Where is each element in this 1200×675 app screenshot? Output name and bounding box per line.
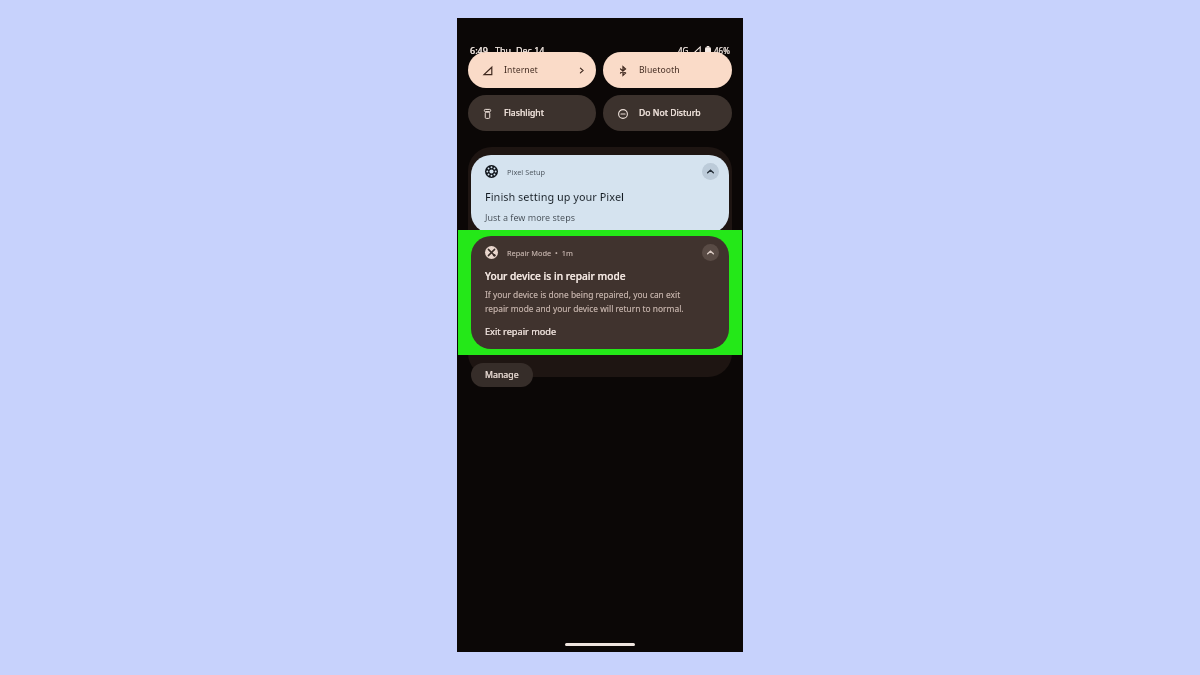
staticText: 46% (714, 45, 730, 56)
staticText: Exit repair mode (485, 325, 557, 338)
button[interactable]: Internet (468, 52, 596, 88)
button[interactable]: Do Not Disturb (603, 95, 732, 131)
staticText: 6:49 (470, 44, 488, 56)
staticText: Internet (504, 64, 538, 76)
button[interactable]: Collapse notification (702, 244, 719, 261)
staticText: Thu, Dec 14 (495, 44, 545, 56)
staticText: Your device is in repair mode (485, 269, 626, 283)
staticText: If your device is done being repaired, y… (485, 289, 681, 300)
button[interactable]: Pixel Setup (471, 155, 729, 233)
staticText: repair mode and your device will return … (485, 303, 684, 314)
staticText: Pixel Setup (507, 167, 546, 177)
staticText: Manage (485, 369, 519, 381)
staticText: 4G (678, 45, 689, 56)
staticText: Just a few more steps (485, 211, 576, 223)
staticText: Finish setting up your Pixel (485, 189, 624, 204)
button[interactable]: Collapse notification (702, 163, 719, 180)
staticText: Repair Mode • 1m (507, 248, 573, 258)
staticText: Flashlight (504, 107, 544, 119)
button[interactable]: Exit repair mode (485, 325, 557, 338)
staticText: Do Not Disturb (639, 107, 701, 119)
button[interactable]: Repair Mode • 1m (471, 236, 729, 349)
button[interactable]: Bluetooth (603, 52, 732, 88)
button[interactable]: Manage (471, 363, 533, 387)
button[interactable]: Flashlight (468, 95, 596, 131)
staticText: Bluetooth (639, 64, 680, 76)
